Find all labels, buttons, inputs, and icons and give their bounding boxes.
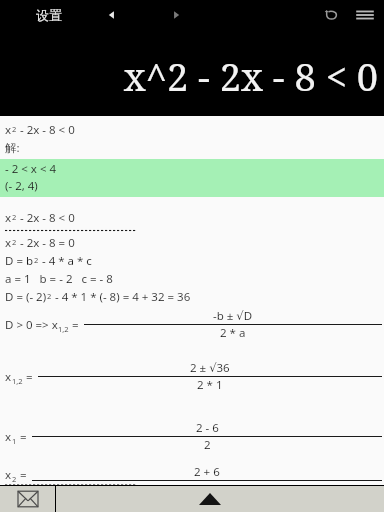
staticText: (- 2, 4)	[5, 178, 38, 194]
staticText: 2	[12, 212, 17, 222]
staticText: 1,2	[58, 324, 69, 334]
staticText: 2 * a	[220, 325, 246, 341]
staticText: =	[17, 467, 30, 483]
staticText: 2 ± √36	[190, 360, 230, 376]
staticText: =	[23, 369, 36, 385]
staticText: x	[5, 467, 12, 483]
staticText: - 4 * 1 * (- 8) = 4 + 32 = 36	[52, 289, 191, 305]
staticText: 1,2	[12, 376, 23, 386]
staticText: D = (- 2)	[5, 289, 47, 305]
staticText: 2	[204, 437, 211, 453]
staticText: 2	[12, 237, 17, 247]
staticText: 2	[12, 124, 17, 134]
button[interactable]: Expand	[56, 486, 384, 512]
staticText: =	[17, 429, 30, 445]
staticText: D = b	[5, 253, 34, 269]
staticText: x^2 - 2x - 8 < 0	[123, 50, 378, 102]
staticText: 2	[47, 291, 52, 301]
button[interactable]: Mail	[0, 486, 55, 512]
button[interactable]: Next	[168, 7, 184, 23]
staticText: - 2x - 8 = 0	[17, 235, 75, 251]
staticText: 2 - 6	[196, 420, 219, 436]
staticText: - 2x - 8 < 0	[17, 122, 75, 138]
staticText: x	[5, 122, 12, 138]
staticText: x	[5, 235, 12, 251]
staticText: a = 1 b = - 2 c = - 8	[5, 271, 113, 287]
staticText: x	[5, 210, 12, 226]
staticText: =	[69, 317, 82, 333]
staticText: 1	[12, 436, 17, 446]
staticText: -b ± √D	[213, 308, 253, 324]
staticText: x	[5, 429, 12, 445]
staticText: - 2 < x < 4	[5, 161, 57, 177]
staticText: 2	[34, 255, 39, 265]
staticText: 2 * 1	[197, 377, 223, 393]
staticText: 2	[12, 474, 17, 484]
button[interactable]: 设置	[28, 3, 70, 27]
button[interactable]: Menu	[354, 4, 376, 26]
staticText: - 4 * a * c	[39, 253, 92, 269]
staticText: 解:	[5, 140, 20, 156]
button[interactable]: Undo	[322, 6, 340, 24]
button[interactable]: Previous	[104, 7, 120, 23]
staticText: 2 + 6	[194, 464, 220, 480]
staticText: 设置	[36, 7, 62, 23]
staticText: x	[5, 369, 12, 385]
staticText: - 2x - 8 < 0	[17, 210, 75, 226]
staticText: D > 0 => x	[5, 317, 58, 333]
